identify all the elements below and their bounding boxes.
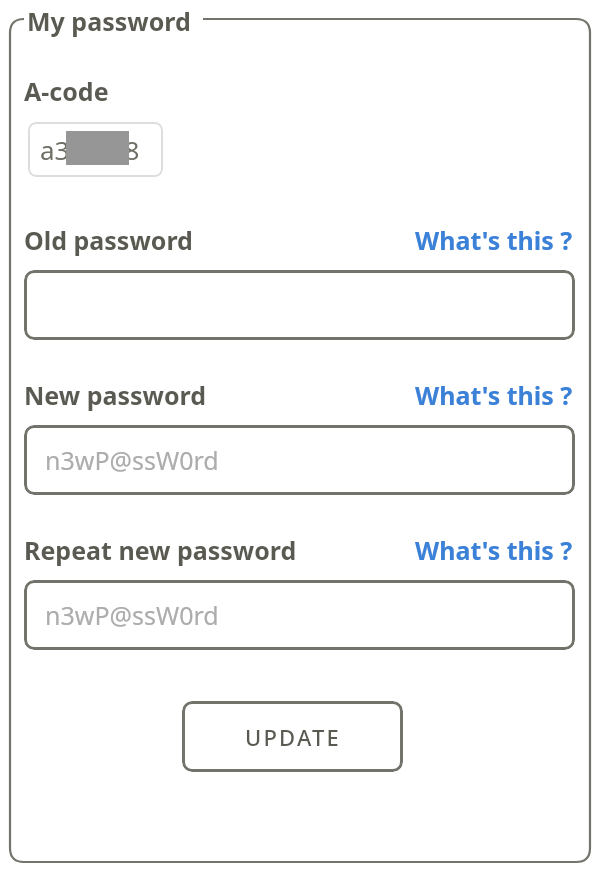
staticText: A-code [24, 74, 109, 108]
staticText: a3xxxx8 [40, 132, 140, 167]
button[interactable] [24, 270, 575, 340]
staticText: What's this ? [415, 533, 573, 567]
button[interactable]: UPDATE [182, 701, 403, 772]
button[interactable]: n3wP@ssW0rd [24, 580, 575, 650]
staticText: My password [27, 4, 191, 38]
staticText: What's this ? [415, 223, 573, 257]
staticText: What's this ? [415, 378, 573, 412]
button[interactable]: What's this ? [413, 531, 575, 569]
button[interactable]: What's this ? [413, 221, 575, 259]
staticText: Old password [24, 223, 193, 257]
staticText: n3wP@ssW0rd [45, 598, 219, 632]
staticText: UPDATE [245, 722, 341, 752]
button[interactable]: n3wP@ssW0rd [24, 425, 575, 495]
staticText: New password [24, 378, 207, 412]
button[interactable]: a3xxxx8 [28, 122, 163, 177]
staticText: n3wP@ssW0rd [45, 443, 219, 477]
button[interactable]: What's this ? [413, 376, 575, 414]
staticText: Repeat new password [24, 533, 297, 567]
